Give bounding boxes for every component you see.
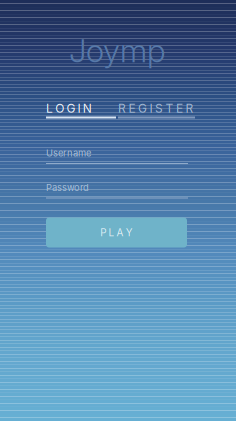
button[interactable]: L bbox=[46, 101, 116, 118]
staticText: Username bbox=[46, 147, 91, 159]
staticText: P bbox=[100, 226, 106, 239]
staticText: R bbox=[118, 101, 126, 115]
staticText: A bbox=[117, 226, 124, 239]
staticText: O bbox=[55, 101, 64, 115]
staticText: G bbox=[138, 101, 147, 115]
staticText: Password bbox=[46, 182, 89, 193]
staticText: G bbox=[66, 101, 75, 115]
staticText: L bbox=[108, 226, 114, 239]
staticText: E bbox=[128, 101, 135, 115]
staticText: L bbox=[46, 101, 53, 115]
staticText: I bbox=[78, 101, 81, 115]
staticText: N bbox=[83, 101, 92, 115]
staticText: I bbox=[149, 101, 152, 115]
staticText: Joymp bbox=[69, 31, 166, 70]
button[interactable]: R bbox=[118, 101, 195, 118]
staticText: Y bbox=[126, 226, 133, 239]
staticText: S bbox=[155, 101, 163, 115]
button[interactable]: P bbox=[46, 217, 187, 247]
staticText: R bbox=[185, 101, 193, 115]
staticText: E bbox=[176, 101, 183, 115]
staticText: T bbox=[165, 101, 173, 115]
